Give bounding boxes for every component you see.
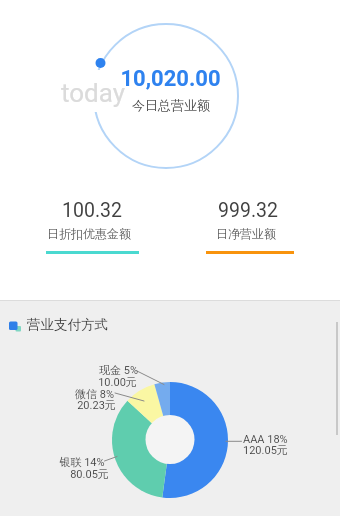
button[interactable]: 营业支付方式 bbox=[27, 304, 147, 344]
staticText: 现金 5% bbox=[99, 363, 138, 377]
staticText: 80.05元 bbox=[70, 467, 109, 481]
staticText: 今日总营业额 bbox=[132, 97, 210, 113]
button[interactable]: 10,020.00 bbox=[70, 59, 270, 99]
staticText: 日折扣优惠金额 bbox=[47, 226, 131, 241]
staticText: 10.00元 bbox=[98, 375, 137, 389]
staticText: 100.32 bbox=[62, 199, 122, 222]
button[interactable]: 999.32 bbox=[148, 190, 340, 230]
staticText: 10,020.00 bbox=[120, 66, 221, 92]
staticText: 营业支付方式 bbox=[27, 316, 108, 333]
button[interactable]: 100.32 bbox=[0, 190, 192, 230]
staticText: AAA 18% bbox=[243, 433, 288, 446]
staticText: 120.05元 bbox=[243, 443, 288, 457]
staticText: 999.32 bbox=[218, 199, 278, 222]
staticText: 微信 8% bbox=[75, 387, 114, 401]
staticText: today bbox=[61, 78, 125, 108]
staticText: 20.23元 bbox=[77, 398, 116, 412]
staticText: 银联 14% bbox=[59, 455, 105, 469]
staticText: 日净营业额 bbox=[216, 226, 276, 241]
